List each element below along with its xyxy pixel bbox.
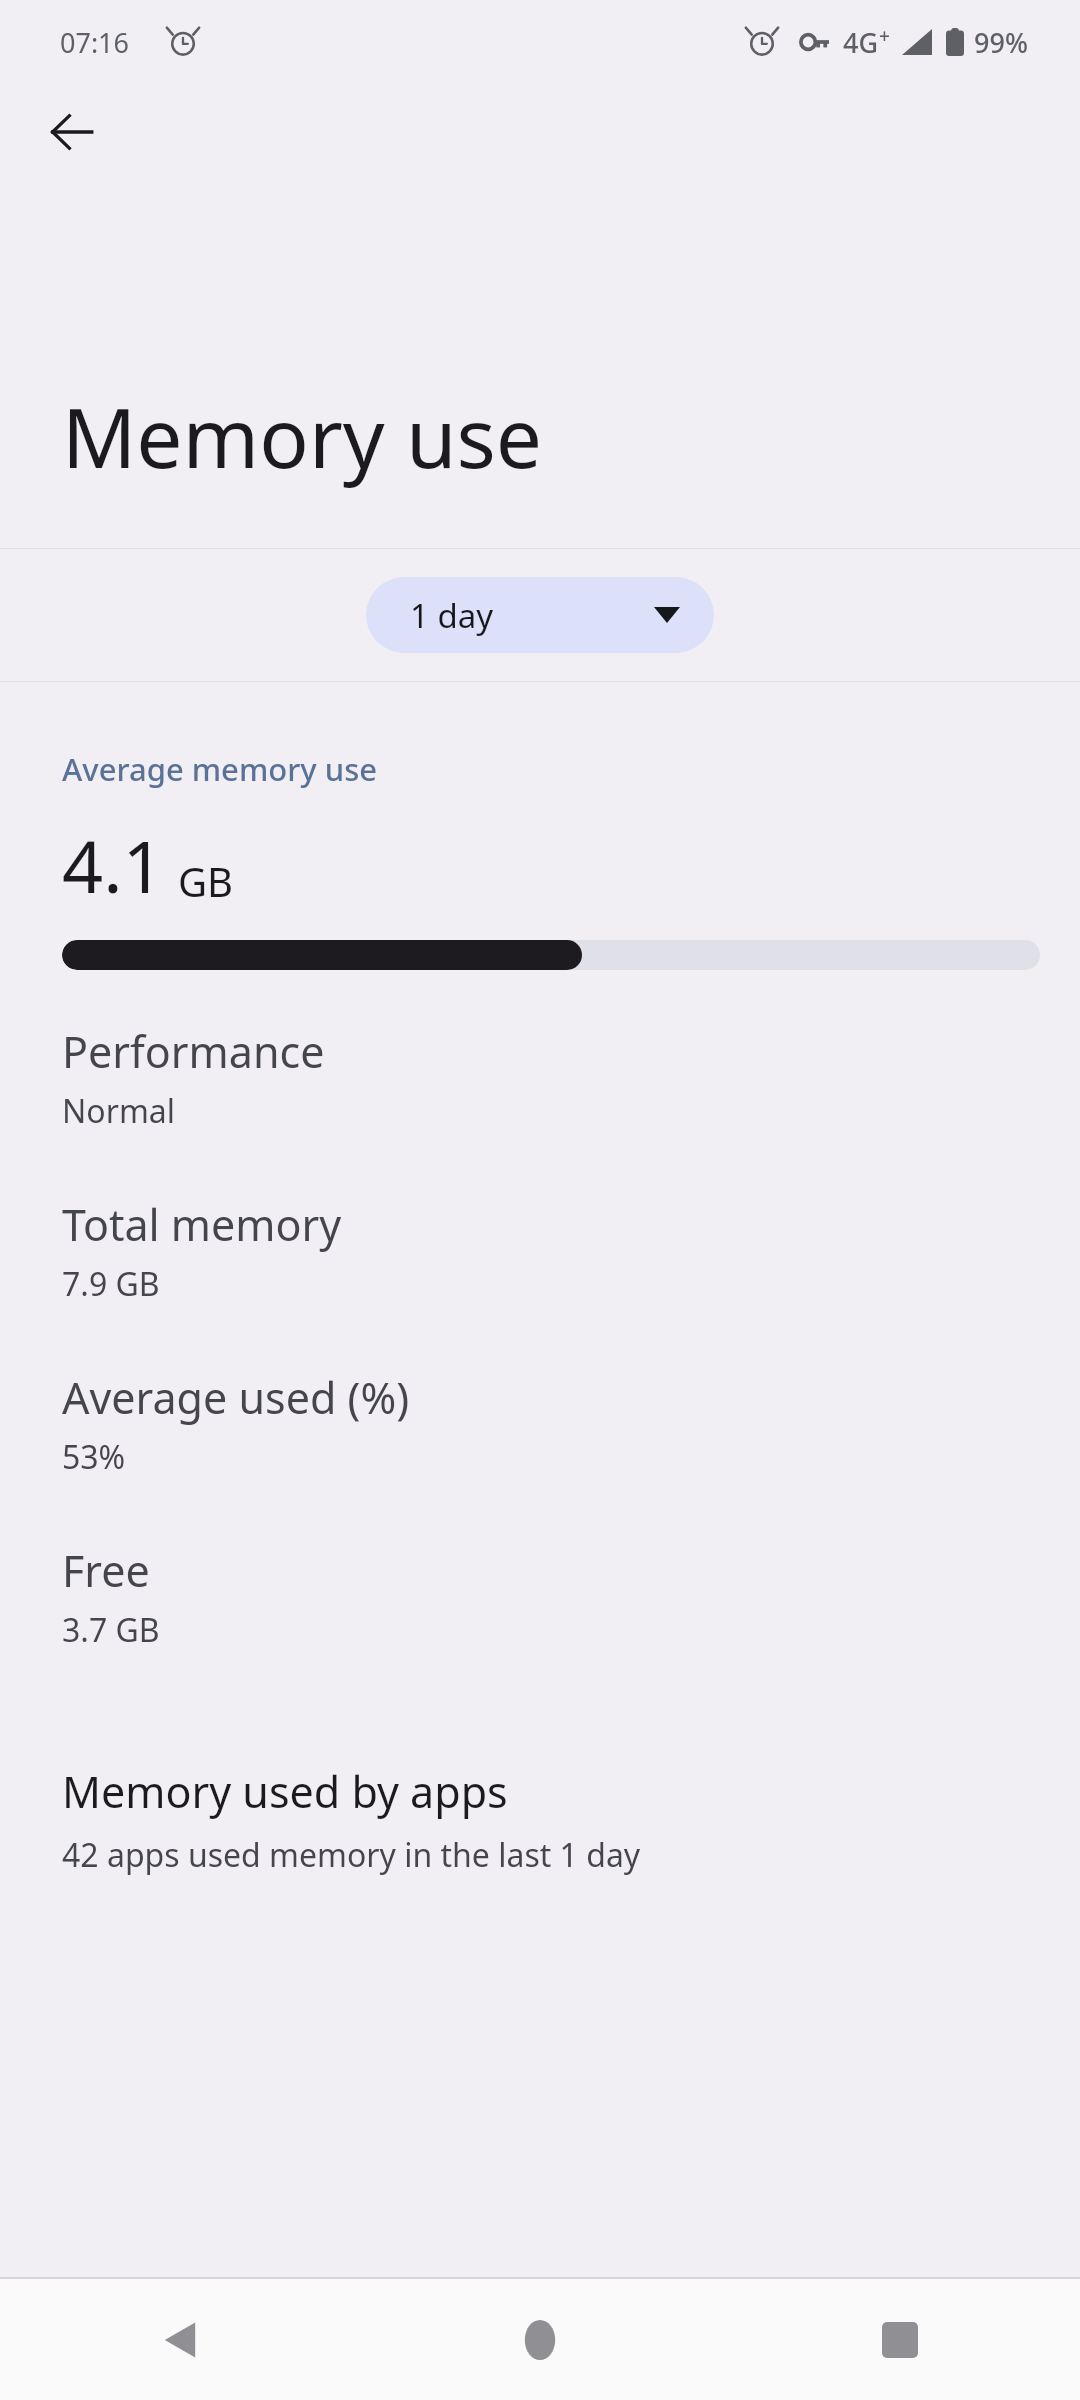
- staticText: 99%: [974, 24, 1028, 61]
- button[interactable]: Memory used by apps: [62, 1762, 1040, 1877]
- staticText: 3.7 GB: [62, 1608, 160, 1652]
- staticText: 07:16: [60, 24, 130, 61]
- staticText: Normal: [62, 1089, 176, 1133]
- staticText: 1 day: [410, 593, 494, 638]
- staticText: Memory used by apps: [62, 1762, 508, 1821]
- button[interactable]: Back: [32, 92, 112, 172]
- button[interactable]: Home: [360, 2279, 720, 2400]
- staticText: Average used (%): [62, 1368, 410, 1427]
- staticText: 4.1: [62, 816, 164, 914]
- staticText: GB: [178, 854, 234, 908]
- staticText: 4G: [843, 24, 879, 61]
- staticText: Memory use: [62, 380, 543, 492]
- button[interactable]: Recent apps: [720, 2279, 1080, 2400]
- staticText: Total memory: [62, 1195, 342, 1254]
- staticText: 53%: [62, 1435, 126, 1479]
- staticText: 42 apps used memory in the last 1 day: [62, 1833, 641, 1877]
- staticText: Free: [62, 1541, 150, 1600]
- button[interactable]: 1 day: [366, 577, 714, 653]
- staticText: Performance: [62, 1022, 325, 1081]
- staticText: +: [879, 23, 890, 49]
- staticText: 7.9 GB: [62, 1262, 160, 1306]
- staticText: Average memory use: [62, 748, 378, 790]
- button[interactable]: Back: [0, 2279, 360, 2400]
